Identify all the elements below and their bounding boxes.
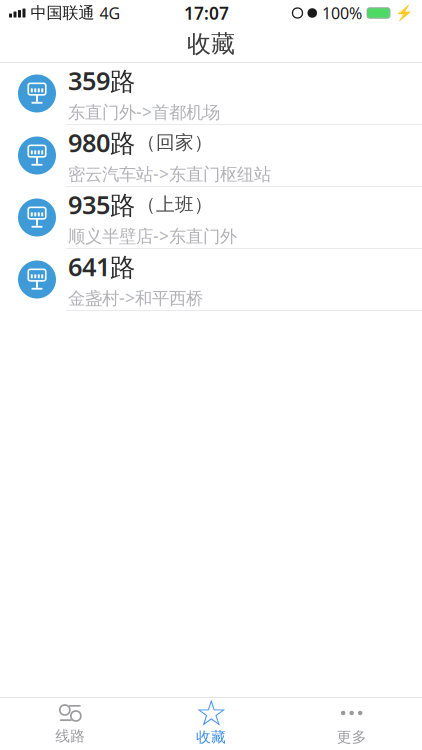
- staticText: 中国联通: [30, 3, 94, 23]
- button[interactable]: 641路: [0, 249, 422, 311]
- button[interactable]: ☆: [141, 698, 281, 750]
- button[interactable]: 935路: [0, 187, 422, 249]
- button[interactable]: 359路: [0, 63, 422, 125]
- staticText: 641路: [68, 250, 135, 283]
- staticText: 线路: [55, 727, 85, 745]
- staticText: ☆: [195, 693, 227, 733]
- staticText: 4G: [99, 2, 120, 24]
- staticText: 收藏: [196, 728, 226, 746]
- button[interactable]: 980路: [0, 125, 422, 187]
- staticText: 359路: [68, 64, 135, 97]
- staticText: 更多: [337, 728, 367, 746]
- staticText: （回家）: [137, 131, 213, 154]
- staticText: 密云汽车站->东直门枢纽站: [68, 162, 271, 185]
- staticText: 100%: [322, 2, 362, 24]
- staticText: 935路: [68, 188, 135, 221]
- staticText: 东直门外->首都机场: [68, 100, 220, 123]
- staticText: 收藏: [187, 29, 235, 59]
- staticText: 980路: [68, 126, 135, 159]
- staticText: 17:07: [184, 1, 229, 24]
- button[interactable]: 线路: [0, 698, 141, 750]
- staticText: ⚡: [395, 5, 413, 21]
- staticText: 顺义半壁店->东直门外: [68, 224, 237, 247]
- button[interactable]: 更多: [281, 698, 422, 750]
- staticText: 金盏村->和平西桥: [68, 286, 203, 309]
- staticText: （上班）: [137, 193, 213, 216]
